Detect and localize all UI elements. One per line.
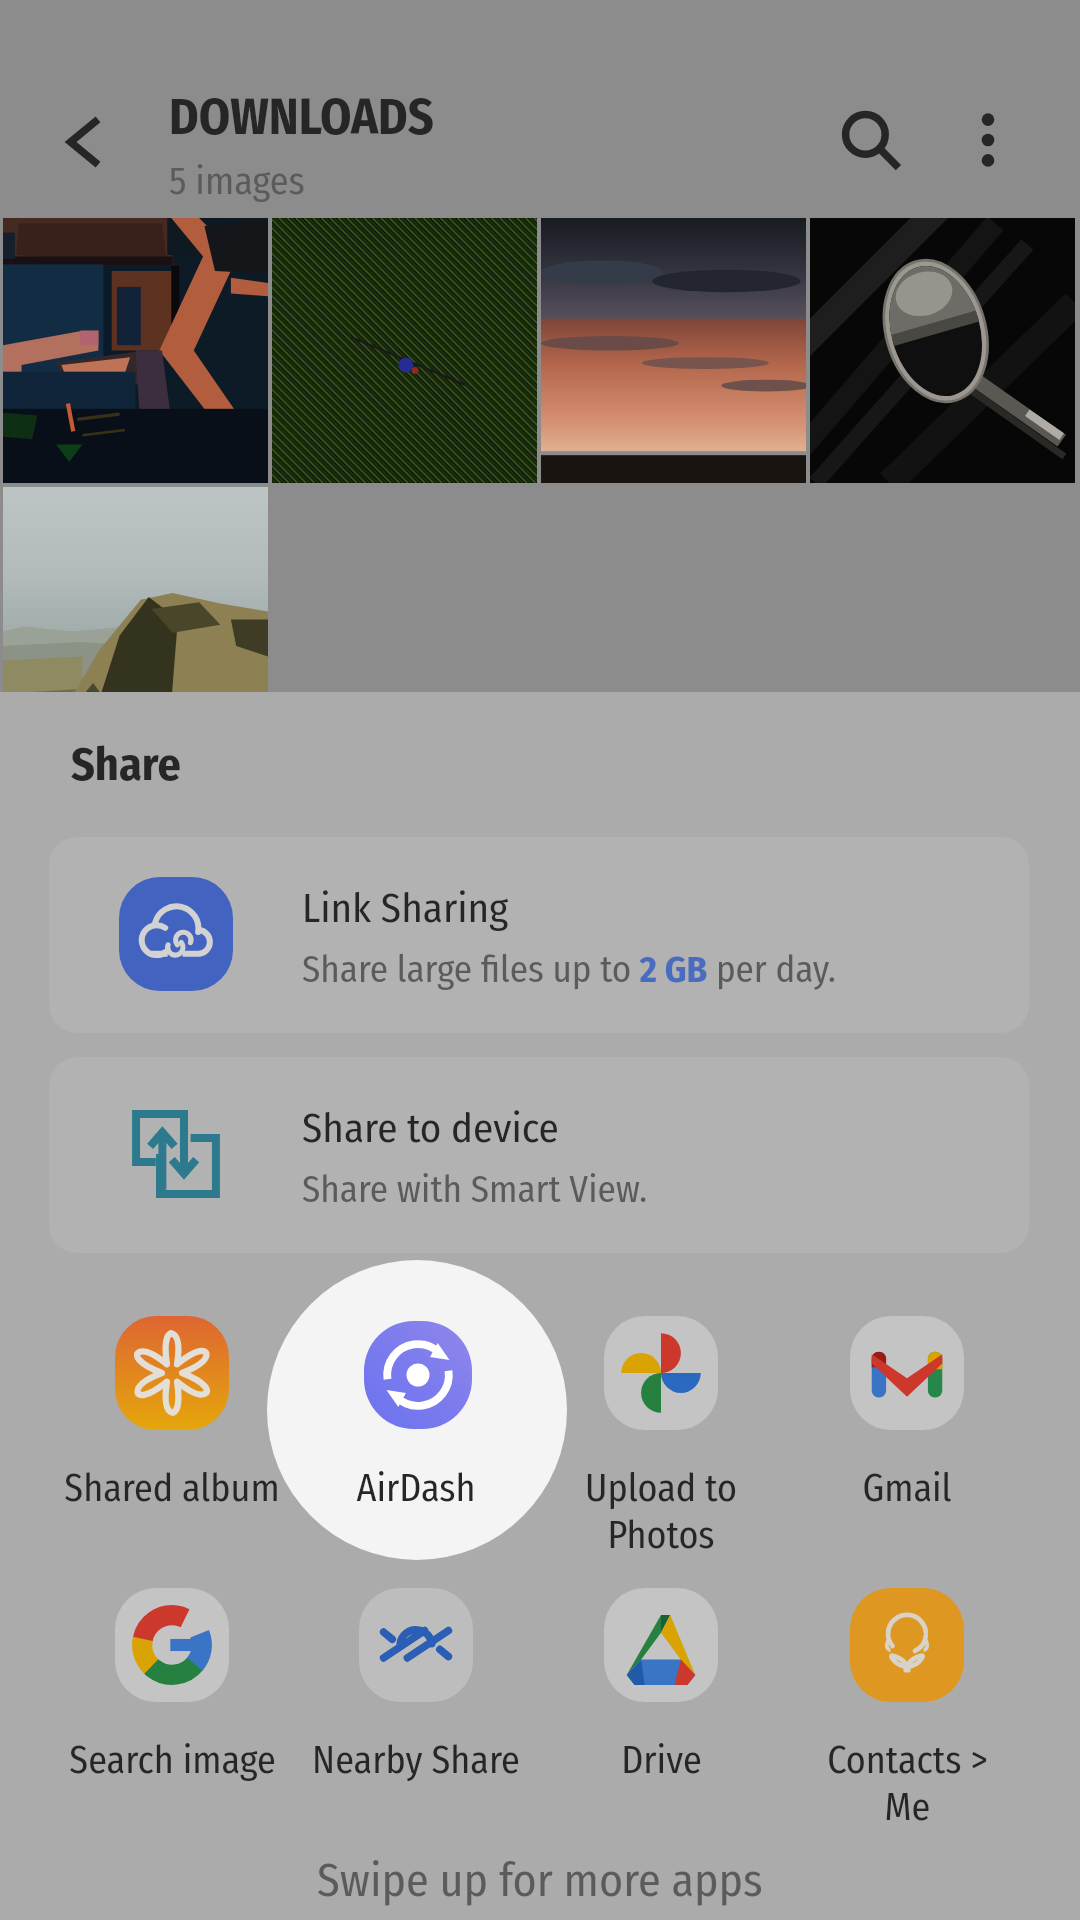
button[interactable]: Search image bbox=[37, 1572, 307, 1828]
button[interactable]: Swipe up for more apps bbox=[0, 1848, 1080, 1912]
staticText: Share to device bbox=[302, 1104, 559, 1153]
staticText: Share bbox=[71, 737, 181, 792]
button[interactable]: Back bbox=[28, 86, 140, 198]
staticText: Share with Smart View. bbox=[302, 1167, 648, 1211]
button[interactable]: Drive bbox=[526, 1572, 796, 1828]
staticText: Shared album bbox=[64, 1465, 280, 1511]
button[interactable]: Gmail bbox=[772, 1300, 1042, 1556]
button[interactable]: Shared album bbox=[37, 1300, 307, 1556]
button[interactable]: Photo 2 bbox=[272, 218, 537, 483]
staticText: Link Sharing bbox=[302, 884, 509, 933]
staticText: Upload to Photos bbox=[585, 1465, 737, 1558]
button[interactable]: Link Sharing bbox=[49, 837, 1029, 1033]
button[interactable]: Contacts > Me bbox=[772, 1572, 1042, 1828]
staticText: 5 images bbox=[169, 158, 305, 204]
button[interactable]: More options bbox=[934, 86, 1042, 194]
staticText: AirDash bbox=[356, 1465, 476, 1511]
staticText: Nearby Share bbox=[312, 1737, 520, 1783]
staticText: Gmail bbox=[862, 1465, 952, 1511]
staticText: Contacts > Me bbox=[827, 1737, 988, 1830]
button[interactable]: Nearby Share bbox=[281, 1572, 551, 1828]
staticText: DOWNLOADS bbox=[169, 87, 434, 147]
button[interactable]: Share to device bbox=[49, 1057, 1029, 1253]
button[interactable]: Photo 5 bbox=[3, 487, 268, 752]
button[interactable]: Photo 4 bbox=[810, 218, 1075, 483]
staticText: Share large files up to 2 GB per day. bbox=[302, 947, 836, 991]
staticText: Swipe up for more apps bbox=[317, 1853, 763, 1908]
button[interactable]: Search bbox=[816, 86, 928, 198]
button[interactable]: Photo 3 bbox=[541, 218, 806, 483]
button[interactable]: AirDash bbox=[281, 1300, 551, 1556]
staticText: Drive bbox=[621, 1737, 702, 1783]
button[interactable]: Upload to Photos bbox=[526, 1300, 796, 1556]
button[interactable]: Photo 1 bbox=[3, 218, 268, 483]
staticText: Search image bbox=[69, 1737, 276, 1783]
